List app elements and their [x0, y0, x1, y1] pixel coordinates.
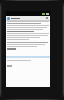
button[interactable]: App icon — [6, 16, 50, 20]
other: App icon — [7, 17, 10, 20]
